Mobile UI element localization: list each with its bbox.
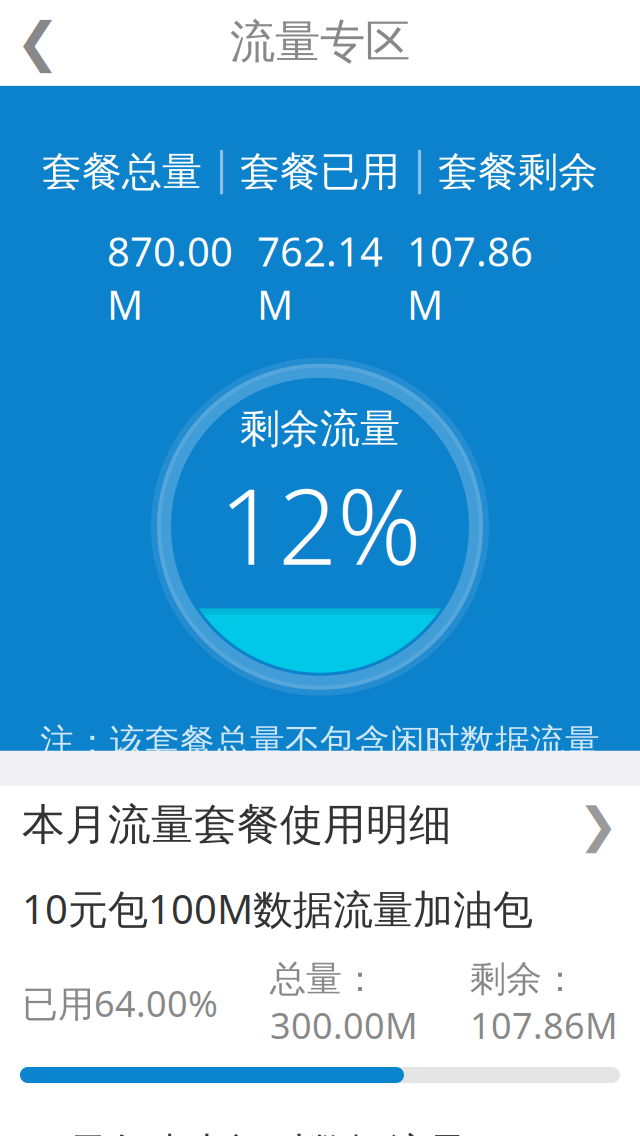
staticText: 已用64.00% [22, 979, 218, 1027]
staticText: 套餐剩余 [438, 147, 598, 196]
button[interactable]: 返回 [0, 4, 76, 80]
staticText: 注：该套餐总量不包含闲时数据流量 [40, 721, 600, 763]
staticText: 10元包100M数据流量加油包 [22, 882, 533, 935]
staticText: 870.00M [107, 224, 233, 331]
staticText: 剩余：107.86M [470, 957, 618, 1049]
staticText: 762.14M [257, 224, 383, 331]
staticText: 本月流量套餐使用明细 [22, 799, 452, 851]
staticText: 流量专区 [230, 14, 410, 70]
staticText: 总量：300.00M [270, 957, 418, 1049]
staticText: │ [210, 151, 232, 193]
staticText: ❮ [15, 12, 60, 72]
staticText: 套餐总量 [42, 147, 202, 196]
button[interactable]: 本月流量套餐使用明细 [0, 786, 640, 864]
staticText: 10元包省内闲时数据流量3GB [22, 1125, 546, 1136]
staticText: 12% [219, 455, 421, 593]
staticText: 107.86M [407, 224, 533, 331]
staticText: 套餐已用 [240, 147, 400, 196]
staticText: │ [408, 151, 430, 193]
staticText: ❯ [578, 798, 618, 852]
staticText: 剩余流量 [240, 404, 400, 453]
